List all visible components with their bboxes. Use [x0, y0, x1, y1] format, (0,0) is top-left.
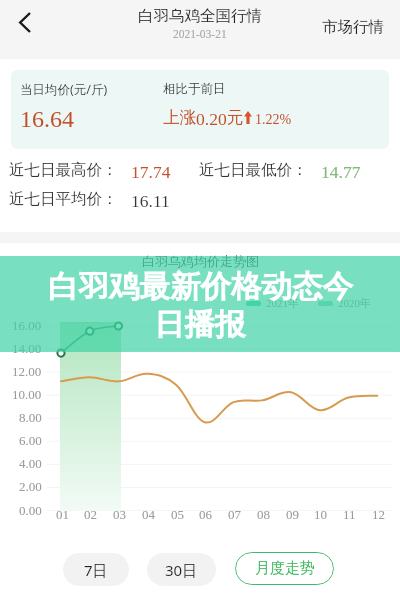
staticText: 4.00 — [19, 456, 42, 470]
staticText: 14.00 — [12, 341, 42, 355]
staticText: 16.00 — [12, 318, 42, 332]
staticText: 16.64 — [20, 106, 74, 133]
staticText: 白羽乌鸡均价走势图 — [142, 253, 259, 269]
staticText: 6.00 — [19, 433, 42, 447]
staticText: 12 — [372, 507, 385, 521]
staticText: 04 — [142, 507, 155, 521]
staticText: 近七日最高价： — [9, 160, 118, 180]
staticText: 白羽鸡最新价格动态今 — [48, 268, 353, 306]
staticText: 10.00 — [12, 387, 42, 401]
staticText: 05 — [171, 507, 184, 521]
staticText: 当日均价(元/斤) — [20, 81, 108, 98]
staticText: 10 — [314, 507, 327, 521]
staticText: 近七日平均价： — [9, 189, 118, 209]
staticText: 06 — [199, 507, 212, 521]
staticText: 2020年 — [338, 296, 371, 310]
staticText: 02 — [84, 507, 97, 521]
staticText: 12.00 — [12, 364, 42, 378]
staticText: 0.20 — [196, 109, 227, 128]
staticText: 相比于前日 — [163, 81, 226, 97]
staticText: 30日 — [165, 560, 198, 580]
staticText: 月度走势 — [255, 559, 315, 578]
staticText: 07 — [228, 507, 241, 521]
staticText: 近七日最低价： — [199, 160, 308, 180]
staticText: 白羽乌鸡全国行情 — [138, 6, 262, 26]
staticText: 2.00 — [19, 479, 42, 493]
staticText: 14.77 — [321, 162, 361, 181]
staticText: 2021-03-21 — [173, 28, 227, 41]
staticText: 01 — [56, 507, 69, 521]
staticText: 1.22% — [255, 112, 292, 128]
button[interactable]: 市场行情 — [308, 9, 398, 45]
staticText: 7日 — [84, 560, 108, 580]
button[interactable]: 月度走势 — [235, 552, 334, 585]
staticText: 2021年 — [266, 296, 299, 310]
staticText: 03 — [113, 507, 126, 521]
button[interactable]: 7日 — [63, 553, 129, 586]
staticText: 11 — [343, 507, 356, 521]
staticText: 0.00 — [19, 503, 42, 517]
staticText: 16.11 — [131, 191, 170, 210]
staticText: 市场行情 — [322, 17, 384, 37]
staticText: 17.74 — [131, 162, 171, 181]
staticText: 上涨 — [163, 107, 196, 128]
staticText: 08 — [257, 507, 270, 521]
staticText: 日播报 — [154, 306, 246, 344]
staticText: 09 — [286, 507, 299, 521]
staticText: 8.00 — [19, 410, 42, 424]
button[interactable]: 30日 — [147, 553, 216, 586]
staticText: 元 — [227, 107, 244, 128]
button[interactable]: Back — [0, 0, 48, 48]
